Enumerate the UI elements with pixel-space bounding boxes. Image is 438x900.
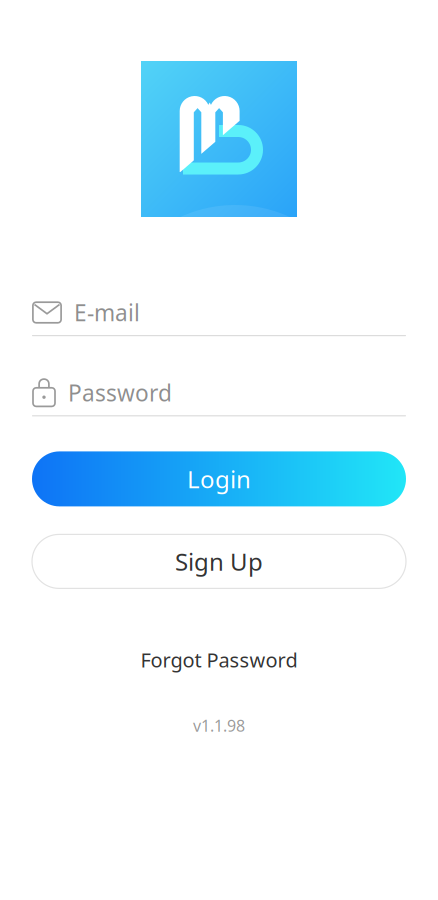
button[interactable]: Login xyxy=(32,451,406,506)
staticText: Password xyxy=(68,378,172,408)
staticText: Forgot Password xyxy=(140,646,297,673)
staticText: Login xyxy=(187,463,251,495)
button[interactable]: Sign Up xyxy=(32,534,406,588)
staticText: E-mail xyxy=(74,297,140,327)
staticText: Sign Up xyxy=(175,545,263,577)
button[interactable]: Forgot Password xyxy=(140,646,297,673)
staticText: v1.1.98 xyxy=(193,715,245,736)
